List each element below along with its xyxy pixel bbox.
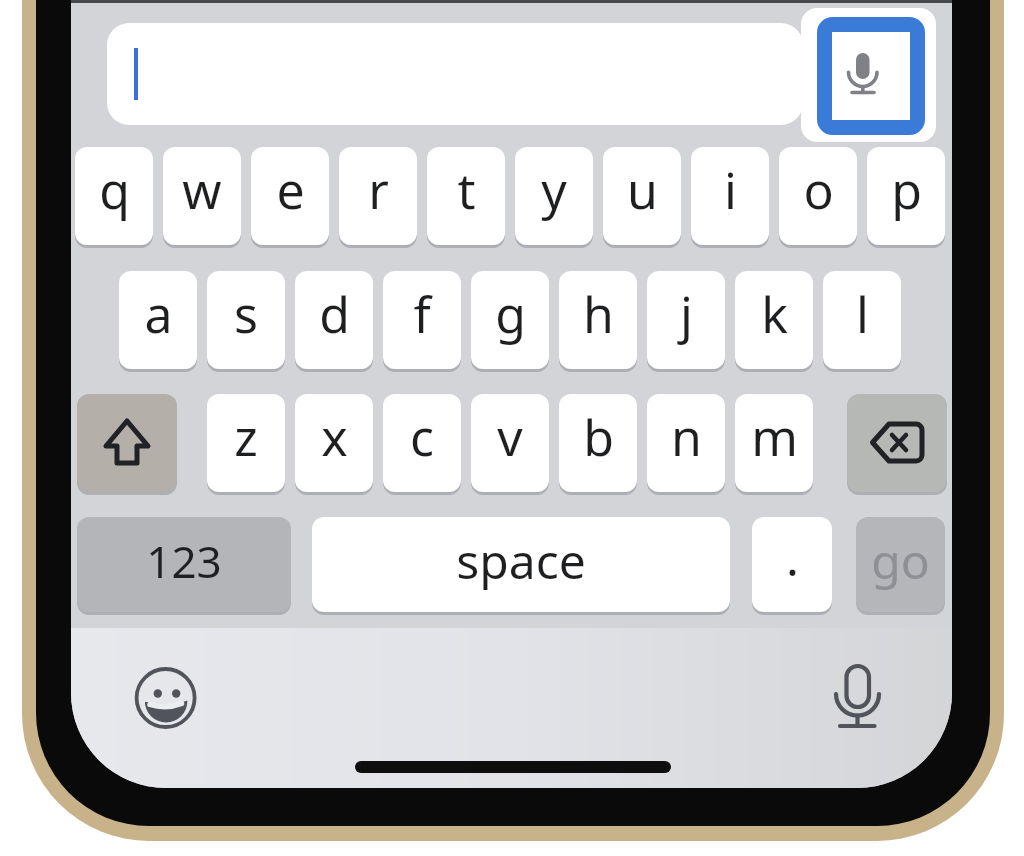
staticText: s <box>234 280 258 348</box>
button[interactable]: y <box>515 147 593 245</box>
staticText: a <box>144 280 173 348</box>
button[interactable]: d <box>295 271 373 369</box>
button[interactable]: v <box>471 394 549 492</box>
button[interactable]: j <box>647 271 725 369</box>
button[interactable]: g <box>471 271 549 369</box>
staticText: u <box>627 156 658 224</box>
button[interactable]: m <box>735 394 813 492</box>
button[interactable]: z <box>207 394 285 492</box>
button[interactable] <box>77 394 177 492</box>
button[interactable]: n <box>647 394 725 492</box>
staticText: e <box>276 156 305 224</box>
staticText: i <box>724 156 737 224</box>
staticText: y <box>541 156 567 224</box>
button[interactable]: a <box>119 271 197 369</box>
staticText: h <box>583 280 614 348</box>
staticText: t <box>457 156 476 224</box>
button[interactable] <box>827 663 887 725</box>
button[interactable]: s <box>207 271 285 369</box>
staticText: p <box>891 156 922 224</box>
staticText: . <box>786 525 799 590</box>
staticText: v <box>497 403 523 471</box>
staticText: l <box>856 280 869 348</box>
staticText: go <box>871 528 930 593</box>
button[interactable]: b <box>559 394 637 492</box>
button[interactable] <box>138 670 198 730</box>
staticText: z <box>234 403 258 471</box>
staticText: c <box>410 403 434 471</box>
button[interactable]: go <box>856 517 945 612</box>
button[interactable]: r <box>339 147 417 245</box>
button[interactable]: f <box>383 271 461 369</box>
button[interactable]: 123 <box>77 517 291 612</box>
button[interactable]: c <box>383 394 461 492</box>
button[interactable]: q <box>75 147 153 245</box>
button[interactable]: e <box>251 147 329 245</box>
button[interactable]: u <box>603 147 681 245</box>
button[interactable]: l <box>823 271 901 369</box>
staticText: o <box>803 156 834 224</box>
staticText: n <box>671 403 702 471</box>
button[interactable]: o <box>779 147 857 245</box>
staticText: j <box>680 280 693 348</box>
button[interactable]: h <box>559 271 637 369</box>
button[interactable]: . <box>752 517 832 612</box>
staticText: x <box>321 403 348 471</box>
button[interactable]: p <box>867 147 945 245</box>
staticText: g <box>495 280 526 348</box>
staticText: 123 <box>146 531 222 591</box>
button[interactable]: k <box>735 271 813 369</box>
staticText: m <box>751 403 798 471</box>
staticText: d <box>319 280 350 348</box>
staticText: q <box>99 156 130 224</box>
staticText: f <box>413 280 431 348</box>
button[interactable] <box>107 23 803 125</box>
button[interactable]: space <box>312 517 730 612</box>
staticText: k <box>761 280 788 348</box>
button[interactable]: i <box>691 147 769 245</box>
button[interactable] <box>847 394 947 492</box>
button[interactable]: w <box>163 147 241 245</box>
staticText: b <box>583 403 614 471</box>
staticText: w <box>182 156 222 224</box>
button[interactable] <box>801 8 936 142</box>
button[interactable]: x <box>295 394 373 492</box>
staticText: r <box>368 156 389 224</box>
button[interactable]: t <box>427 147 505 245</box>
staticText: space <box>456 528 586 593</box>
